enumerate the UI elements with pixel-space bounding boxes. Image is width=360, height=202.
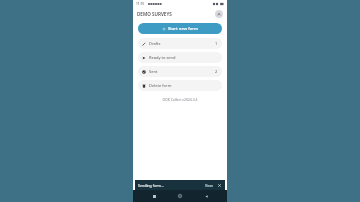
button[interactable]: Back (201, 191, 211, 201)
button[interactable]: Recent apps (149, 191, 159, 201)
button[interactable]: Sent (138, 66, 222, 77)
button[interactable]: Drafts (138, 38, 222, 49)
staticText: Sent (149, 69, 158, 74)
button[interactable]: Home (175, 191, 185, 201)
staticText: 2 (215, 69, 218, 74)
button[interactable]: Account (215, 10, 223, 18)
staticText: View (205, 183, 213, 188)
staticText: Start new form (168, 26, 198, 32)
staticText: 1 (215, 41, 218, 46)
staticText: Ready to send (149, 55, 176, 60)
button[interactable]: Start new form (138, 23, 222, 34)
staticText: Delete form (149, 83, 172, 88)
button[interactable]: Delete form (138, 80, 222, 91)
staticText: DEMO SURVEYS (137, 11, 172, 17)
staticText: ODK Collect v2024.3.4 (133, 97, 227, 102)
button[interactable]: View (204, 183, 214, 188)
staticText: 11:15 (136, 2, 145, 6)
button[interactable]: Ready to send (138, 52, 222, 63)
staticText: Sending form... (138, 183, 164, 188)
button[interactable]: Dismiss (217, 183, 222, 188)
staticText: Drafts (149, 41, 161, 46)
